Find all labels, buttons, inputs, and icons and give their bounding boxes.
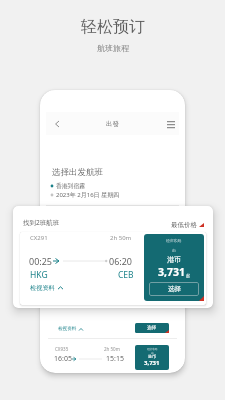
staticText: 选择 [147,325,157,331]
staticText: 港币 [148,354,156,359]
staticText: 选择出发航班 [52,167,103,178]
staticText: 2h 50m [104,346,120,352]
staticText: 出發 [106,120,119,128]
button[interactable]: Menu [164,118,177,130]
staticText: 找到2班航班 [23,218,60,227]
button[interactable]: Back [51,118,63,130]
staticText: 航班旅程 [97,43,129,53]
staticText: 港币 [167,255,181,264]
staticText: HKG [30,269,48,281]
staticText: 轻松预订 [81,17,145,37]
button[interactable]: 仅直航航班 [102,205,158,221]
staticText: 15:15 [106,354,124,364]
button[interactable]: 价格由低至高 [46,205,101,221]
staticText: 由 [172,248,176,253]
staticText: 06:20 [109,255,133,267]
staticText: 2h 50m [110,234,132,242]
button[interactable]: 经济客舱 [135,345,169,370]
button[interactable]: 选择 [149,282,199,296]
staticText: 起 [186,273,190,278]
staticText: 3,731 [158,265,186,279]
staticText: 由 [151,351,154,354]
button[interactable]: Sort [159,205,179,221]
staticText: 检视资料 [58,326,77,332]
button[interactable]: 检视资料 [58,326,83,332]
staticText: 最低价格 [171,221,197,229]
staticText: CX935 [55,346,69,352]
staticText: 选择 [168,285,181,293]
staticText: CEB [118,269,134,281]
staticText: 00:25 [29,255,53,267]
staticText: 3,731 [144,359,160,367]
staticText: 检视资料 [30,284,55,292]
staticText: CX291 [30,234,48,242]
staticText: 经济客舱 [166,238,182,243]
staticText: 经济客舱 [147,347,158,350]
staticText: 16:05 [54,354,72,364]
button[interactable]: 选择 [135,323,169,333]
staticText: 2023年 2月16日 星期四 [56,191,120,199]
staticText: 香港到宿霧 [56,182,85,189]
button[interactable]: 检视资料 [30,284,63,292]
